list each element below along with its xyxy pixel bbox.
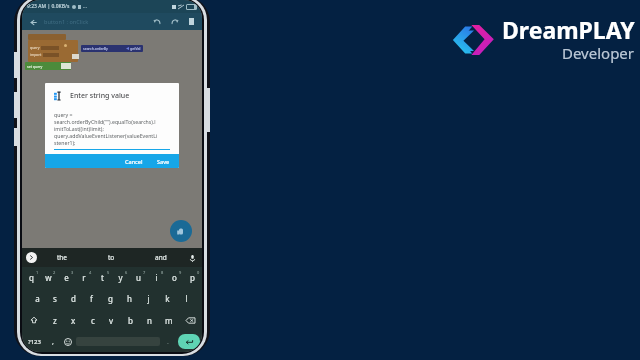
staticText: 4: [89, 270, 92, 275]
button[interactable]: z: [45, 309, 64, 331]
staticText: 1: [36, 270, 39, 275]
staticText: import: [30, 52, 42, 57]
staticText: 2: [53, 270, 56, 275]
staticText: 9: [179, 270, 182, 275]
staticText: to: [108, 253, 115, 262]
staticText: 0: [197, 270, 200, 275]
staticText: DreamPLAY: [502, 14, 635, 45]
button[interactable]: to: [87, 253, 136, 262]
staticText: n: [147, 315, 152, 326]
button[interactable]: k: [158, 288, 177, 309]
staticText: .: [167, 337, 169, 347]
staticText: query =: [54, 111, 73, 118]
button[interactable]: Voice input: [185, 251, 199, 265]
button[interactable]: r: [75, 267, 93, 288]
staticText: u: [136, 272, 141, 283]
staticText: d: [71, 293, 76, 304]
staticText: Enter string value: [70, 91, 130, 101]
staticText: q: [29, 272, 34, 283]
button[interactable]: w: [40, 267, 57, 288]
staticText: query: [30, 45, 40, 50]
button[interactable]: Undo: [152, 16, 163, 27]
staticText: m: [165, 315, 173, 326]
staticText: o: [172, 272, 177, 283]
button[interactable]: Back: [27, 16, 39, 28]
staticText: l: [185, 293, 188, 304]
button[interactable]: l: [177, 288, 196, 309]
button[interactable]: Shift: [22, 309, 45, 331]
staticText: ?123: [28, 338, 41, 346]
button[interactable]: Enter: [178, 334, 200, 349]
staticText: the: [57, 253, 68, 262]
staticText: w: [45, 272, 52, 283]
staticText: 6: [125, 270, 128, 275]
staticText: e: [64, 272, 69, 283]
button[interactable]: m: [159, 309, 178, 331]
staticText: Save: [157, 158, 170, 165]
button[interactable]: g: [101, 288, 120, 309]
button[interactable]: h: [120, 288, 139, 309]
button[interactable]: c: [83, 309, 102, 331]
staticText: Developer: [562, 43, 635, 63]
staticText: k: [165, 293, 170, 304]
staticText: query.addValueEventListener(valueEventLi: [54, 132, 158, 139]
button[interactable]: s: [46, 288, 64, 309]
button[interactable]: v: [102, 309, 121, 331]
staticText: h: [127, 293, 132, 304]
staticText: r: [82, 272, 86, 283]
staticText: Cancel: [125, 158, 143, 165]
button[interactable]: Add block: [170, 220, 192, 242]
button[interactable]: Cancel: [120, 155, 148, 168]
button[interactable]: Save: [186, 16, 197, 27]
staticText: 8: [161, 270, 164, 275]
button[interactable]: ,: [46, 331, 60, 352]
staticText: set query: [27, 64, 43, 69]
staticText: a: [35, 293, 40, 304]
button[interactable]: u: [129, 267, 147, 288]
staticText: x: [71, 315, 76, 326]
button[interactable]: More suggestions: [26, 252, 37, 263]
staticText: 9:23 AM | 0.0KB/s: [27, 3, 70, 10]
staticText: ,: [52, 337, 54, 347]
button[interactable]: j: [139, 288, 158, 309]
button[interactable]: f: [82, 288, 101, 309]
staticText: f: [90, 293, 93, 304]
staticText: j: [147, 293, 150, 304]
button[interactable]: a: [28, 288, 46, 309]
button[interactable]: Backspace: [178, 309, 202, 331]
button[interactable]: b: [121, 309, 140, 331]
button[interactable]: the: [37, 253, 87, 262]
staticText: i: [155, 272, 158, 283]
staticText: b: [128, 315, 133, 326]
button[interactable]: Redo: [169, 16, 180, 27]
staticText: search.orderBy: [83, 46, 108, 51]
staticText: search.orderByChild("").equalTo(searchs)…: [54, 118, 156, 125]
button[interactable]: d: [64, 288, 82, 309]
button[interactable]: i: [147, 267, 165, 288]
staticText: y: [118, 272, 123, 283]
button[interactable]: e: [57, 267, 75, 288]
button[interactable]: ?123: [22, 331, 46, 352]
button[interactable]: t: [93, 267, 111, 288]
staticText: imitToLast((int)limit);: [54, 125, 104, 132]
button[interactable]: q: [23, 267, 40, 288]
button[interactable]: Save: [152, 155, 175, 168]
button[interactable]: and: [136, 253, 185, 262]
staticText: v: [109, 315, 114, 326]
button[interactable]: x: [64, 309, 83, 331]
button[interactable]: o: [165, 267, 183, 288]
button[interactable]: p: [183, 267, 201, 288]
staticText: ...: [83, 3, 88, 10]
staticText: 3: [71, 270, 74, 275]
staticText: c: [91, 315, 95, 326]
staticText: z: [53, 315, 57, 326]
button[interactable]: Emoji: [60, 331, 76, 352]
staticText: button1 : onClick: [44, 18, 89, 25]
staticText: and: [155, 253, 167, 262]
staticText: 7: [143, 270, 146, 275]
button[interactable]: y: [111, 267, 129, 288]
button[interactable]: n: [140, 309, 159, 331]
staticText: s: [53, 293, 57, 304]
